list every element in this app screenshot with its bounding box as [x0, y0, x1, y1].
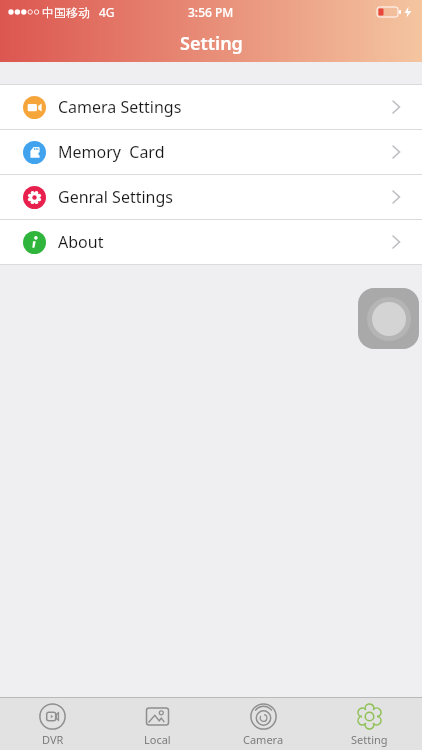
staticText: 4G — [99, 4, 115, 20]
staticText: Genral Settings — [58, 186, 173, 208]
staticText: Memory Card — [58, 141, 165, 163]
staticText: DVR — [42, 732, 64, 747]
button[interactable]: Genral Settings — [0, 175, 422, 219]
button[interactable]: DVR — [0, 698, 105, 750]
staticText: 中国移动 — [42, 5, 90, 20]
button[interactable]: Camera — [210, 698, 316, 750]
button[interactable]: Memory Card — [0, 130, 422, 174]
staticText: Camera Settings — [58, 96, 182, 118]
staticText: Local — [144, 732, 171, 747]
button[interactable] — [358, 288, 419, 349]
staticText: Camera — [243, 732, 284, 747]
staticText: 3:56 PM — [188, 4, 234, 20]
button[interactable]: Camera Settings — [0, 85, 422, 129]
staticText: Setting — [351, 732, 388, 747]
button[interactable]: Setting — [316, 698, 422, 750]
button[interactable]: Local — [105, 698, 210, 750]
button[interactable]: About — [0, 220, 422, 264]
staticText: Setting — [180, 31, 243, 56]
staticText: About — [58, 231, 104, 253]
